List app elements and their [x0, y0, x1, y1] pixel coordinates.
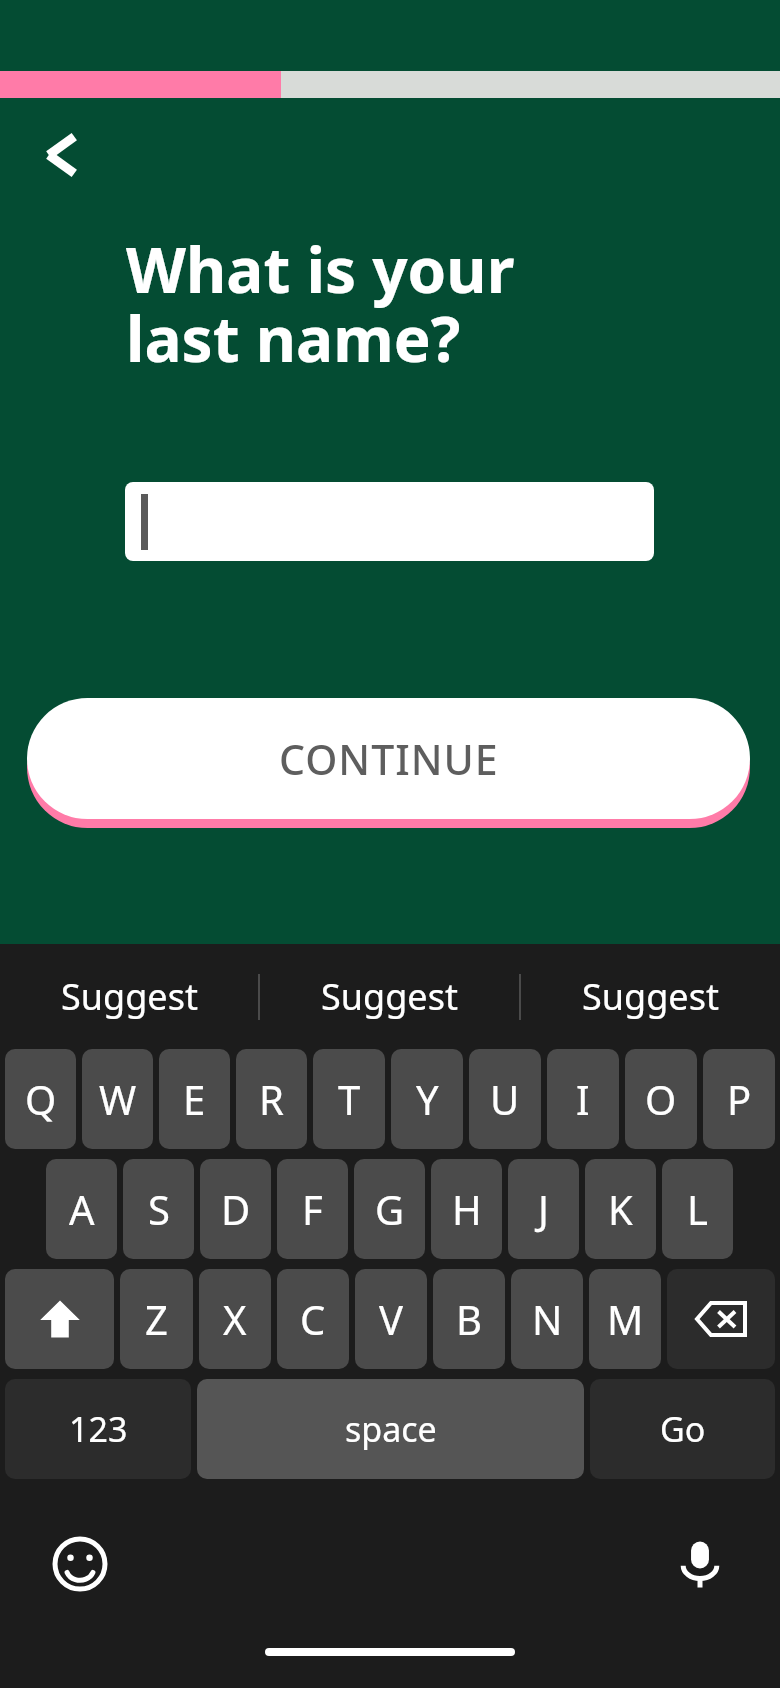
staticText: Go [660, 1406, 706, 1452]
button[interactable]: Y [391, 1049, 463, 1149]
staticText: Y [416, 1072, 439, 1126]
button[interactable]: R [236, 1049, 307, 1149]
button[interactable]: A [46, 1159, 117, 1259]
button[interactable] [125, 482, 654, 561]
staticText: Suggest [321, 972, 458, 1021]
staticText: A [69, 1182, 95, 1236]
button[interactable]: space [197, 1379, 584, 1479]
button[interactable]: U [469, 1049, 541, 1149]
button[interactable]: N [511, 1269, 583, 1369]
button[interactable]: L [662, 1159, 733, 1259]
button[interactable]: Emoji [40, 1524, 120, 1604]
button[interactable]: Go [590, 1379, 775, 1479]
button[interactable]: Z [120, 1269, 193, 1369]
button[interactable]: C [277, 1269, 349, 1369]
button[interactable]: P [703, 1049, 775, 1149]
button[interactable]: I [547, 1049, 619, 1149]
button[interactable]: O [625, 1049, 697, 1149]
staticText: Q [25, 1072, 57, 1126]
staticText: U [490, 1072, 520, 1126]
button[interactable]: D [200, 1159, 271, 1259]
staticText: M [607, 1292, 644, 1346]
button[interactable]: Shift [5, 1269, 114, 1369]
button[interactable]: CONTINUE [27, 698, 750, 828]
staticText: Suggest [61, 972, 198, 1021]
staticText: P [727, 1072, 752, 1126]
button[interactable]: J [508, 1159, 579, 1259]
button[interactable]: Suggest [521, 944, 780, 1049]
staticText: R [259, 1072, 284, 1126]
button[interactable]: W [82, 1049, 153, 1149]
button[interactable]: S [123, 1159, 194, 1259]
staticText: T [338, 1072, 361, 1126]
staticText: space [345, 1406, 437, 1452]
staticText: O [645, 1072, 677, 1126]
staticText: K [608, 1182, 633, 1236]
staticText: CONTINUE [279, 731, 499, 787]
staticText: 123 [69, 1406, 128, 1452]
staticText: E [183, 1072, 206, 1126]
button[interactable]: Suggest [0, 944, 258, 1049]
button[interactable]: Backspace [667, 1269, 775, 1369]
staticText: W [99, 1072, 137, 1126]
staticText: X [223, 1292, 247, 1346]
staticText: C [300, 1292, 326, 1346]
staticText: G [375, 1182, 405, 1236]
staticText: D [221, 1182, 251, 1236]
staticText: Suggest [582, 972, 719, 1021]
staticText: L [687, 1182, 708, 1236]
staticText: What is your last name? [126, 227, 515, 380]
button[interactable]: B [433, 1269, 505, 1369]
staticText: I [576, 1072, 590, 1126]
staticText: F [302, 1182, 323, 1236]
button[interactable]: Q [5, 1049, 76, 1149]
button[interactable]: Back [20, 113, 104, 197]
button[interactable]: F [277, 1159, 348, 1259]
button[interactable]: Voice input [660, 1524, 740, 1604]
button[interactable]: X [199, 1269, 271, 1369]
button[interactable]: V [355, 1269, 427, 1369]
staticText: H [452, 1182, 482, 1236]
staticText: S [148, 1182, 170, 1236]
button[interactable]: M [589, 1269, 661, 1369]
button[interactable]: T [313, 1049, 385, 1149]
staticText: Z [145, 1292, 168, 1346]
staticText: J [538, 1182, 549, 1236]
button[interactable]: K [585, 1159, 656, 1259]
button[interactable]: 123 [5, 1379, 191, 1479]
button[interactable]: E [159, 1049, 230, 1149]
staticText: V [379, 1292, 403, 1346]
button[interactable]: G [354, 1159, 425, 1259]
button[interactable]: Suggest [260, 944, 519, 1049]
button[interactable]: H [431, 1159, 502, 1259]
staticText: N [532, 1292, 563, 1346]
staticText: B [456, 1292, 482, 1346]
